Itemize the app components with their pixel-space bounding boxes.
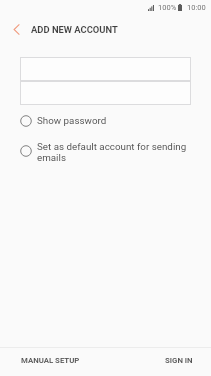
staticText: ADD NEW ACCOUNT xyxy=(31,24,118,35)
button[interactable]: MANUAL SETUP xyxy=(0,356,80,365)
button[interactable]: Back xyxy=(6,19,26,39)
button[interactable] xyxy=(20,81,191,105)
staticText: Set as default account for sending email… xyxy=(37,141,195,163)
button[interactable]: Set as default account for sending email… xyxy=(0,142,211,164)
button[interactable] xyxy=(20,57,191,81)
staticText: 10:00 xyxy=(187,3,206,12)
staticText: 100% xyxy=(158,3,177,12)
staticText: Show password xyxy=(37,115,107,126)
button[interactable]: SIGN IN xyxy=(165,356,211,365)
button[interactable]: Show password xyxy=(0,113,211,129)
